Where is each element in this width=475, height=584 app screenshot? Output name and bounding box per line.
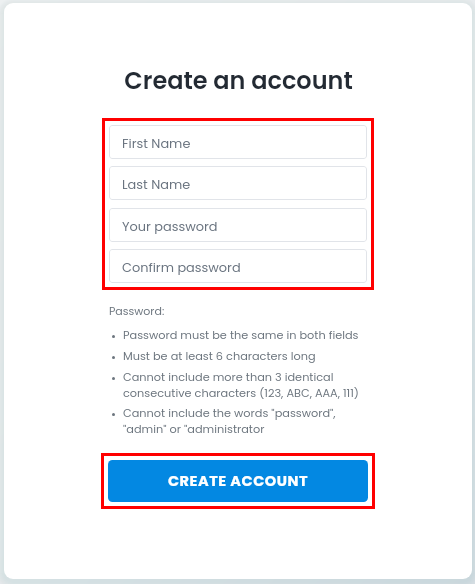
button[interactable]: Your password (109, 208, 367, 242)
staticText: Cannot include more than 3 identical con… (123, 369, 377, 401)
staticText: Confirm password (122, 258, 241, 276)
staticText: Password: (109, 303, 165, 318)
staticText: Must be at least 6 characters long (123, 348, 316, 364)
staticText: Create an account (124, 64, 353, 98)
staticText: Cannot include the words "password", "ad… (123, 405, 377, 437)
staticText: CREATE ACCOUNT (168, 471, 309, 491)
button[interactable]: CREATE ACCOUNT (108, 460, 368, 502)
button[interactable]: Confirm password (109, 249, 367, 283)
staticText: Password must be the same in both fields (123, 327, 359, 343)
button[interactable]: Last Name (109, 166, 367, 200)
button[interactable]: First Name (109, 125, 367, 159)
staticText: Last Name (122, 175, 191, 193)
staticText: Your password (122, 217, 218, 235)
staticText: First Name (122, 134, 191, 152)
